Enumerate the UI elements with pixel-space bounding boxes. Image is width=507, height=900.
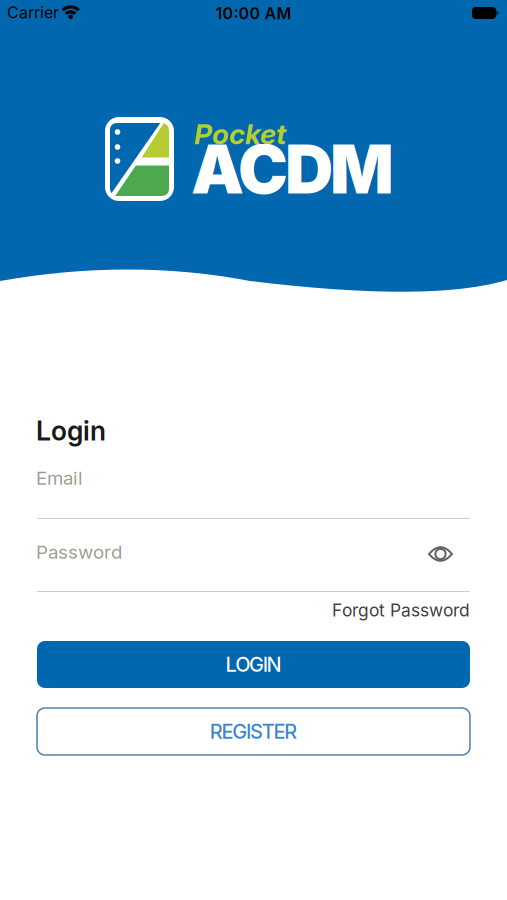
textField[interactable]: Email: [36, 467, 469, 489]
staticText: LOGIN: [225, 653, 282, 676]
secureTextField[interactable]: Password: [36, 541, 469, 563]
staticText: Login: [36, 415, 106, 446]
button[interactable]: Forgot Password: [332, 600, 470, 620]
staticText: Password: [36, 541, 122, 563]
staticText: Forgot Password: [332, 600, 470, 620]
staticText: Email: [36, 467, 83, 489]
staticText: ACDM: [191, 129, 394, 210]
staticText: REGISTER: [210, 720, 297, 743]
button[interactable]: Show password: [428, 545, 453, 563]
staticText: Carrier: [7, 3, 59, 22]
button[interactable]: REGISTER: [37, 708, 470, 755]
staticText: 10:00 AM: [215, 4, 291, 23]
button[interactable]: LOGIN: [37, 641, 470, 688]
staticText: Pocket: [194, 117, 286, 151]
